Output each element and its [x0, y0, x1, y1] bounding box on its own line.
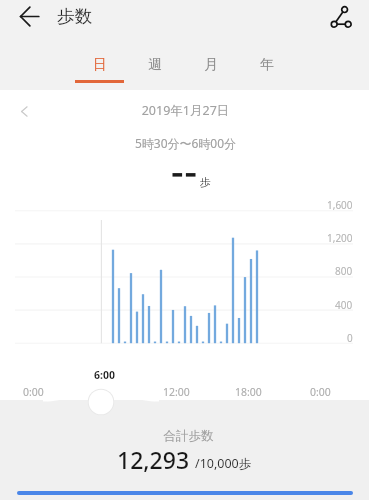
- staticText: 0:00: [310, 385, 331, 399]
- button[interactable]: Time selector: [88, 389, 114, 415]
- staticText: 週: [148, 56, 162, 74]
- staticText: 合計歩数: [4, 428, 369, 444]
- staticText: 歩数: [57, 5, 92, 27]
- button[interactable]: Previous day: [10, 97, 38, 125]
- staticText: 0:00: [23, 385, 44, 399]
- staticText: 18:00: [235, 385, 262, 399]
- staticText: 800: [335, 264, 353, 278]
- staticText: 日: [93, 56, 107, 74]
- staticText: 6:00: [94, 368, 115, 382]
- staticText: 歩: [200, 175, 211, 189]
- button[interactable]: Back: [11, 0, 47, 33]
- staticText: 1,600: [327, 198, 353, 212]
- button[interactable]: Share: [324, 0, 357, 33]
- button[interactable]: 週: [127, 45, 183, 90]
- button[interactable]: 年: [239, 45, 295, 90]
- button[interactable]: 月: [183, 45, 239, 90]
- staticText: 400: [335, 298, 353, 312]
- button[interactable]: 日: [71, 45, 127, 90]
- staticText: 12:00: [163, 385, 190, 399]
- staticText: 年: [260, 56, 274, 74]
- staticText: /10,000歩: [195, 455, 252, 472]
- staticText: 2019年1月27日: [1, 102, 369, 119]
- staticText: 0: [347, 331, 353, 345]
- staticText: 5時30分〜6時00分: [1, 135, 369, 151]
- staticText: 1,200: [327, 231, 353, 245]
- staticText: 12,293: [117, 444, 190, 475]
- staticText: 月: [204, 56, 218, 74]
